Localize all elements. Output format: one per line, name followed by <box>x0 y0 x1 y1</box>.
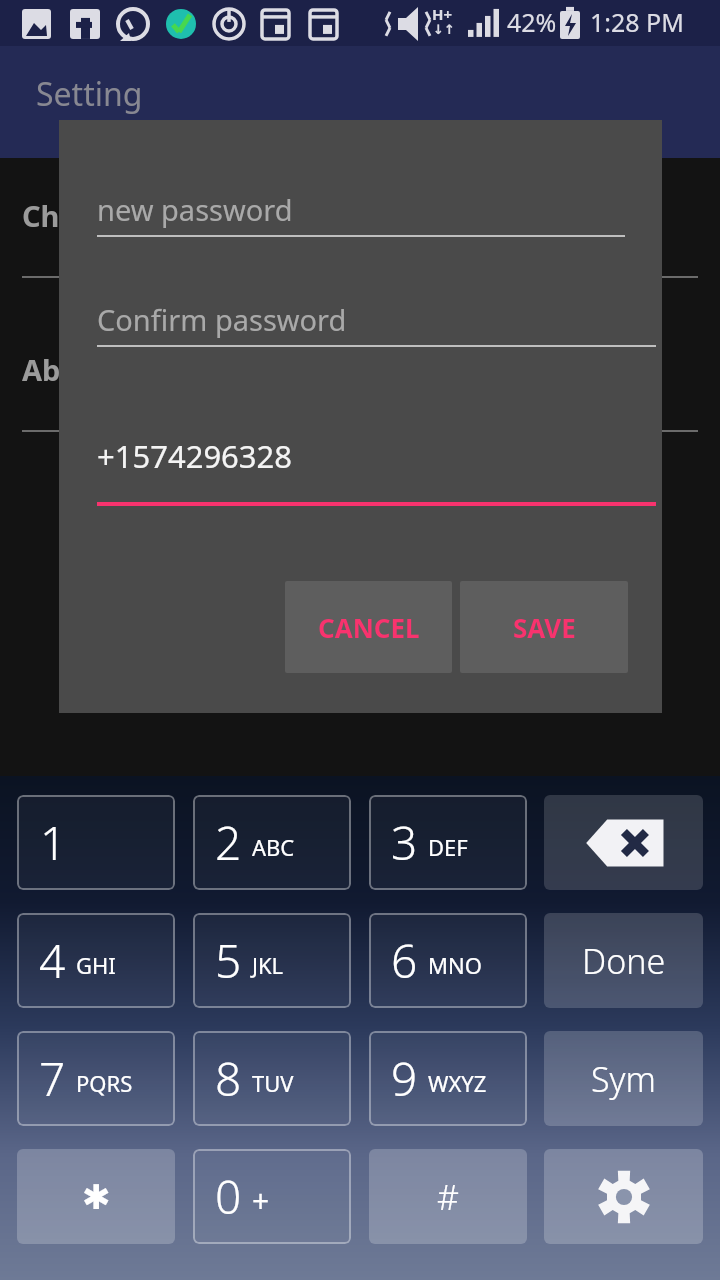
staticText: 0 <box>215 1165 242 1228</box>
staticText: Done <box>582 938 666 984</box>
staticText: new password <box>97 190 293 229</box>
staticText: Setting <box>36 72 143 116</box>
staticText: 8 <box>215 1047 242 1110</box>
staticText: 1 <box>40 811 67 874</box>
staticText: 1:28 PM <box>590 5 684 39</box>
button[interactable]: 9 WXYZ <box>369 1031 527 1126</box>
button[interactable]: CANCEL <box>285 581 452 673</box>
button[interactable]: 1 <box>17 795 175 890</box>
staticText: 5 <box>215 929 242 992</box>
staticText: ✱ <box>82 1177 111 1217</box>
button[interactable]: ✱ <box>17 1149 175 1244</box>
button[interactable]: 7 PQRS <box>17 1031 175 1126</box>
button[interactable]: Backspace <box>544 795 703 890</box>
button[interactable]: 0 + <box>193 1149 351 1244</box>
staticText: GHI <box>76 950 116 980</box>
button[interactable]: 5 JKL <box>193 913 351 1008</box>
staticText: 2 <box>215 811 242 874</box>
staticText: 4 <box>39 929 66 992</box>
button[interactable]: 4 GHI <box>17 913 175 1008</box>
staticText: +1574296328 <box>97 435 293 477</box>
staticText: 3 <box>391 811 418 874</box>
staticText: SAVE <box>513 610 576 645</box>
button[interactable]: Keyboard settings <box>544 1149 703 1244</box>
staticText: # <box>437 1174 459 1220</box>
button[interactable]: 2 ABC <box>193 795 351 890</box>
button[interactable]: Sym <box>544 1031 703 1126</box>
staticText: 42% <box>507 5 557 39</box>
staticText: DEF <box>428 832 468 862</box>
button[interactable]: 8 TUV <box>193 1031 351 1126</box>
staticText: TUV <box>252 1068 294 1098</box>
button[interactable]: 3 DEF <box>369 795 527 890</box>
staticText: ABC <box>252 832 295 862</box>
staticText: CANCEL <box>318 610 420 645</box>
button[interactable]: 6 MNO <box>369 913 527 1008</box>
staticText: About <box>22 350 110 389</box>
button[interactable]: # <box>369 1149 527 1244</box>
button[interactable]: SAVE <box>460 581 628 673</box>
staticText: + <box>252 1180 270 1221</box>
staticText: 9 <box>391 1047 418 1110</box>
staticText: Confirm password <box>97 300 347 339</box>
staticText: MNO <box>428 950 482 980</box>
staticText: WXYZ <box>428 1068 487 1098</box>
button[interactable]: Done <box>544 913 703 1008</box>
staticText: Sym <box>591 1056 656 1102</box>
staticText: 6 <box>391 929 418 992</box>
staticText: ↓↑ <box>433 22 455 37</box>
staticText: JKL <box>252 950 284 980</box>
staticText: 7 <box>39 1047 66 1110</box>
staticText: Change Password <box>22 196 278 235</box>
staticText: H+ <box>432 4 453 24</box>
staticText: PQRS <box>76 1068 133 1098</box>
